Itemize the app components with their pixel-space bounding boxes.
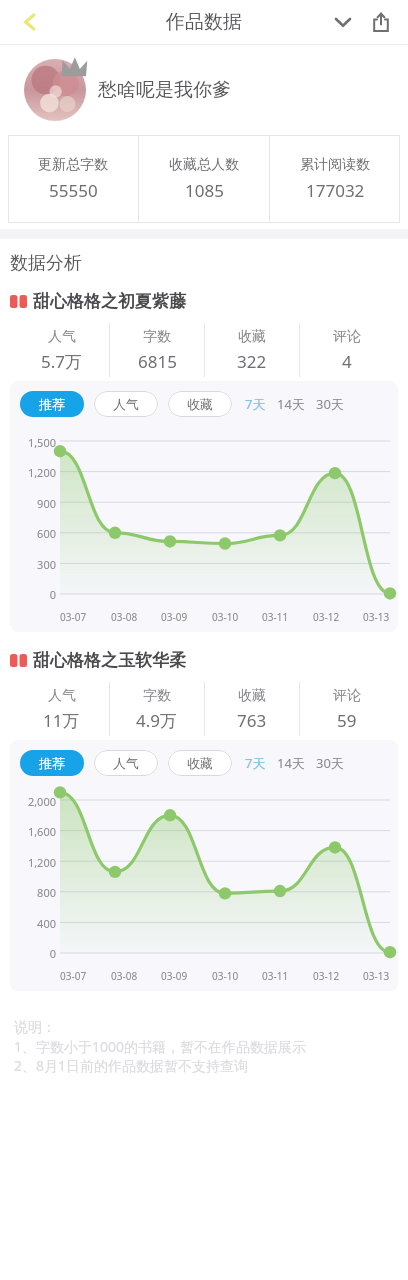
staticText: 1、字数小于1000的书籍，暂不在作品数据展示: [14, 1037, 307, 1056]
button[interactable]: 愁啥呢是我你爹: [0, 45, 408, 135]
staticText: 0: [49, 946, 56, 961]
staticText: 5.7万: [41, 350, 83, 373]
button[interactable]: 30天: [315, 750, 345, 776]
staticText: 4.9万: [136, 709, 178, 732]
staticText: 14天: [277, 754, 305, 772]
button[interactable]: 人气: [94, 391, 158, 417]
staticText: 6815: [138, 350, 177, 373]
staticText: 03-13: [363, 610, 390, 624]
button[interactable]: 收藏: [168, 391, 232, 417]
staticText: 03-10: [212, 610, 239, 624]
button[interactable]: Share: [362, 3, 400, 41]
staticText: 字数: [143, 687, 171, 705]
staticText: 1,200: [27, 465, 56, 480]
button[interactable]: 累计阅读数: [270, 135, 400, 223]
staticText: 1,600: [27, 824, 56, 839]
staticText: 评论: [333, 328, 361, 346]
staticText: 03-08: [111, 610, 138, 624]
button[interactable]: Back: [10, 2, 50, 42]
staticText: 177032: [306, 179, 365, 202]
staticText: 推荐: [39, 755, 65, 771]
staticText: 55550: [49, 179, 98, 202]
button[interactable]: 人气: [14, 319, 109, 381]
staticText: 03-12: [313, 610, 340, 624]
button[interactable]: 甜心格格之初夏紫藤: [10, 287, 408, 315]
staticText: 900: [37, 496, 56, 511]
staticText: 30天: [316, 395, 344, 413]
staticText: 03-09: [161, 610, 188, 624]
staticText: 03-08: [111, 969, 138, 983]
button[interactable]: 更新总字数: [8, 135, 138, 223]
button[interactable]: 收藏: [168, 750, 232, 776]
button[interactable]: 收藏: [205, 319, 299, 381]
staticText: 7天: [245, 754, 266, 772]
staticText: 收藏总人数: [169, 156, 239, 174]
staticText: 数据分析: [10, 252, 82, 275]
staticText: 0: [49, 587, 56, 602]
staticText: 03-10: [212, 969, 239, 983]
staticText: 763: [237, 709, 267, 732]
staticText: 收藏: [187, 396, 213, 412]
staticText: 推荐: [39, 396, 65, 412]
button[interactable]: 人气: [94, 750, 158, 776]
button[interactable]: 收藏: [205, 678, 299, 740]
staticText: 322: [237, 350, 267, 373]
staticText: 03-12: [313, 969, 340, 983]
button[interactable]: 字数: [110, 678, 204, 740]
staticText: 14天: [277, 395, 305, 413]
button[interactable]: 7天: [244, 391, 267, 417]
staticText: 人气: [113, 396, 139, 412]
button[interactable]: Expand: [324, 3, 362, 41]
staticText: 1,500: [27, 435, 56, 450]
staticText: 甜心格格之初夏紫藤: [33, 291, 186, 312]
staticText: 收藏: [238, 328, 266, 346]
staticText: 800: [37, 885, 56, 900]
button[interactable]: 14天: [276, 391, 306, 417]
staticText: 作品数据: [166, 10, 242, 34]
button[interactable]: 30天: [315, 391, 345, 417]
staticText: 人气: [113, 755, 139, 771]
staticText: 收藏: [238, 687, 266, 705]
staticText: 300: [37, 557, 56, 572]
button[interactable]: 7天: [244, 750, 267, 776]
staticText: 2、8月1日前的作品数据暂不支持查询: [14, 1056, 249, 1075]
staticText: 愁啥呢是我你爹: [98, 78, 231, 102]
staticText: 字数: [143, 328, 171, 346]
button[interactable]: 评论: [300, 678, 394, 740]
button[interactable]: 人气: [14, 678, 109, 740]
staticText: 03-11: [262, 969, 289, 983]
staticText: 03-13: [363, 969, 390, 983]
button[interactable]: 甜心格格之玉软华柔: [10, 646, 408, 674]
staticText: 7天: [245, 395, 266, 413]
staticText: 11万: [43, 709, 80, 732]
staticText: 说明：: [14, 1019, 56, 1037]
staticText: 更新总字数: [38, 156, 108, 174]
staticText: 03-11: [262, 610, 289, 624]
staticText: 甜心格格之玉软华柔: [33, 650, 186, 671]
button[interactable]: 推荐: [20, 750, 84, 776]
staticText: 400: [37, 916, 56, 931]
staticText: 人气: [48, 328, 76, 346]
button[interactable]: 14天: [276, 750, 306, 776]
staticText: 2,000: [27, 794, 56, 809]
staticText: 59: [337, 709, 357, 732]
staticText: 03-09: [161, 969, 188, 983]
staticText: 4: [342, 350, 352, 373]
staticText: 收藏: [187, 755, 213, 771]
staticText: 1085: [185, 179, 224, 202]
staticText: 30天: [316, 754, 344, 772]
staticText: 累计阅读数: [300, 156, 370, 174]
staticText: 03-07: [60, 969, 87, 983]
button[interactable]: 收藏总人数: [139, 135, 269, 223]
staticText: 1,200: [27, 855, 56, 870]
staticText: 600: [37, 526, 56, 541]
button[interactable]: 评论: [300, 319, 394, 381]
staticText: 03-07: [60, 610, 87, 624]
button[interactable]: 推荐: [20, 391, 84, 417]
staticText: 人气: [48, 687, 76, 705]
staticText: 评论: [333, 687, 361, 705]
button[interactable]: 字数: [110, 319, 204, 381]
